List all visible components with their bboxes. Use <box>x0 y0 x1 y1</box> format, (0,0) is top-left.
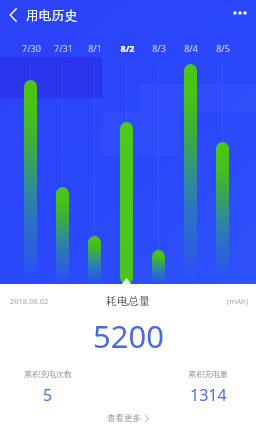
staticText: 用电历史 <box>26 8 78 24</box>
staticText: 5 <box>43 384 53 406</box>
staticText: 5200 <box>93 315 164 357</box>
staticText: 2018.08.02 <box>10 296 49 306</box>
staticText: 7/30 <box>22 42 41 54</box>
staticText: 8/1 <box>88 42 102 54</box>
staticText: 查看更多 <box>107 413 141 424</box>
button[interactable]: 7/30 <box>15 40 47 56</box>
button[interactable]: 8/5 <box>207 40 239 56</box>
button[interactable]: 累积充电量 <box>168 369 248 406</box>
staticText: 累积充电次数 <box>24 369 72 379</box>
staticText: 1314 <box>190 384 227 406</box>
button[interactable]: 累积充电次数 <box>8 369 88 406</box>
staticText: (mAh) <box>227 296 248 306</box>
staticText: 8/2 <box>120 42 135 54</box>
staticText: 7/31 <box>54 42 73 54</box>
button[interactable]: 7/31 <box>47 40 79 56</box>
staticText: 8/5 <box>216 42 230 54</box>
button[interactable]: 8/4 <box>175 40 207 56</box>
staticText: 8/4 <box>184 42 198 54</box>
button[interactable]: Back <box>0 2 26 28</box>
button[interactable]: 8/1 <box>79 40 111 56</box>
staticText: 耗电总量 <box>106 294 150 308</box>
staticText: 8/3 <box>152 42 166 54</box>
button[interactable]: 8/3 <box>143 40 175 56</box>
button[interactable]: 8/2 <box>111 40 143 56</box>
staticText: 累积充电量 <box>188 369 228 379</box>
button[interactable]: 查看更多 <box>99 410 157 427</box>
button[interactable]: More options <box>227 0 253 26</box>
